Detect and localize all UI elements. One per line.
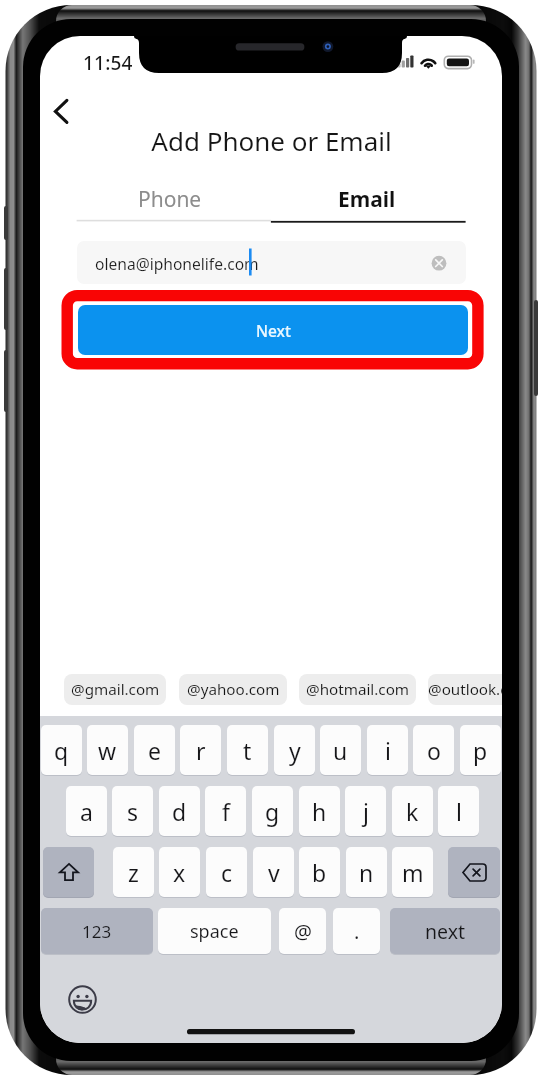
button[interactable]: @hotmail.com [299,674,416,705]
staticText: 11:54 [83,50,133,76]
button[interactable]: u [320,725,361,775]
staticText: 123 [82,920,112,943]
button[interactable]: . [333,908,380,954]
staticText: q [54,735,69,766]
button[interactable]: Shift [43,847,94,897]
button[interactable]: d [159,786,200,836]
staticText: s [127,796,139,827]
button[interactable]: i [367,725,408,775]
staticText: p [473,735,488,766]
staticText: n [359,857,374,888]
staticText: @ [294,918,312,945]
staticText: u [333,735,348,766]
staticText: @yahoo.com [187,679,280,700]
button[interactable]: z [113,847,154,897]
button[interactable]: Email [270,176,464,222]
staticText: d [172,796,187,827]
button[interactable]: @outlook.com [428,674,502,705]
staticText: y [289,735,301,766]
button[interactable]: x [159,847,200,897]
staticText: next [425,918,466,945]
staticText: o [427,735,441,766]
staticText: Email [338,185,396,214]
staticText: e [148,735,161,766]
button[interactable]: a [66,786,107,836]
staticText: olena@iphonelife.com [95,253,259,274]
button[interactable]: @yahoo.com [179,674,287,705]
button[interactable]: p [460,725,501,775]
staticText: b [312,857,327,888]
staticText: t [243,735,252,766]
button[interactable]: y [274,725,315,775]
button[interactable]: w [87,725,128,775]
button[interactable]: @ [279,908,326,954]
button[interactable]: olena@iphonelife.com [77,241,466,284]
staticText: k [406,796,419,827]
button[interactable]: q [41,725,82,775]
button[interactable]: v [253,847,294,897]
button[interactable]: Next [78,305,468,355]
staticText: @gmail.com [71,679,160,700]
button[interactable]: h [299,786,340,836]
staticText: space [190,919,239,944]
button[interactable]: Emoji [68,985,97,1014]
staticText: w [98,735,117,766]
button[interactable]: s [112,786,153,836]
button[interactable]: 123 [41,908,153,954]
button[interactable]: t [227,725,268,775]
button[interactable]: b [299,847,340,897]
button[interactable]: Phone [70,176,270,222]
button[interactable]: Back [40,89,84,133]
button[interactable]: @gmail.com [64,674,166,705]
button[interactable]: o [413,725,454,775]
staticText: r [196,735,206,766]
button[interactable]: space [158,908,271,954]
button[interactable]: Backspace [448,847,500,897]
staticText: Next [256,320,291,341]
staticText: g [265,796,280,827]
button[interactable]: g [252,786,293,836]
staticText: c [221,857,233,888]
button[interactable]: l [438,786,479,836]
staticText: j [363,796,369,827]
staticText: Add Phone or Email [151,123,392,157]
button[interactable]: e [134,725,175,775]
button[interactable]: n [346,847,387,897]
button[interactable]: k [392,786,433,836]
button[interactable]: f [205,786,246,836]
staticText: x [173,857,186,888]
staticText: @hotmail.com [306,679,410,700]
staticText: m [402,857,424,888]
button[interactable]: next [390,908,500,954]
staticText: . [354,918,360,945]
staticText: Phone [138,185,202,214]
staticText: v [268,857,280,888]
staticText: a [80,796,93,827]
button[interactable]: m [392,847,433,897]
staticText: @outlook.com [428,679,502,700]
staticText: i [385,735,391,766]
button[interactable]: c [206,847,247,897]
staticText: l [456,796,462,827]
staticText: z [128,857,139,888]
button[interactable]: r [180,725,221,775]
button[interactable]: j [345,786,386,836]
staticText: h [312,796,327,827]
staticText: f [222,796,230,827]
